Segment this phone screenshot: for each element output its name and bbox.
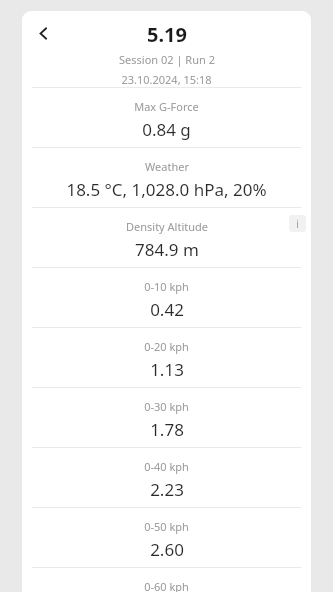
button[interactable]: 0-50 kph bbox=[22, 508, 311, 567]
button[interactable]: Back bbox=[26, 16, 60, 50]
staticText: Session 02 | Run 2 bbox=[119, 52, 215, 67]
staticText: 18.5 °C, 1,028.0 hPa, 20% bbox=[66, 178, 267, 201]
staticText: 784.9 m bbox=[135, 238, 199, 261]
staticText: 0-60 kph bbox=[144, 579, 189, 592]
staticText: 1.78 bbox=[150, 418, 184, 441]
staticText: 2.60 bbox=[150, 538, 184, 561]
button[interactable]: 0-10 kph bbox=[22, 268, 311, 327]
staticText: 0.42 bbox=[150, 298, 184, 321]
staticText: i bbox=[296, 217, 299, 231]
staticText: 0-10 kph bbox=[144, 279, 189, 294]
button[interactable]: 0-20 kph bbox=[22, 328, 311, 387]
staticText: 5.19 bbox=[147, 21, 187, 48]
button[interactable]: 0-40 kph bbox=[22, 448, 311, 507]
button[interactable]: 0-30 kph bbox=[22, 388, 311, 447]
staticText: 2.23 bbox=[150, 478, 184, 501]
staticText: 1.13 bbox=[150, 358, 184, 381]
staticText: Max G-Force bbox=[134, 99, 199, 114]
staticText: 0-50 kph bbox=[144, 519, 189, 534]
button[interactable]: Density Altitude info bbox=[289, 215, 306, 232]
staticText: 0-20 kph bbox=[144, 339, 189, 354]
button[interactable]: Weather bbox=[22, 148, 311, 207]
button[interactable]: 0-60 kph bbox=[22, 568, 311, 592]
staticText: Density Altitude bbox=[126, 219, 208, 234]
button[interactable]: Max G-Force bbox=[22, 88, 311, 147]
staticText: 0.84 g bbox=[142, 118, 191, 141]
staticText: 0-40 kph bbox=[144, 459, 189, 474]
button[interactable]: Density Altitude bbox=[22, 208, 311, 267]
staticText: 23.10.2024, 15:18 bbox=[121, 72, 212, 87]
staticText: Weather bbox=[145, 159, 189, 174]
staticText: 0-30 kph bbox=[144, 399, 189, 414]
